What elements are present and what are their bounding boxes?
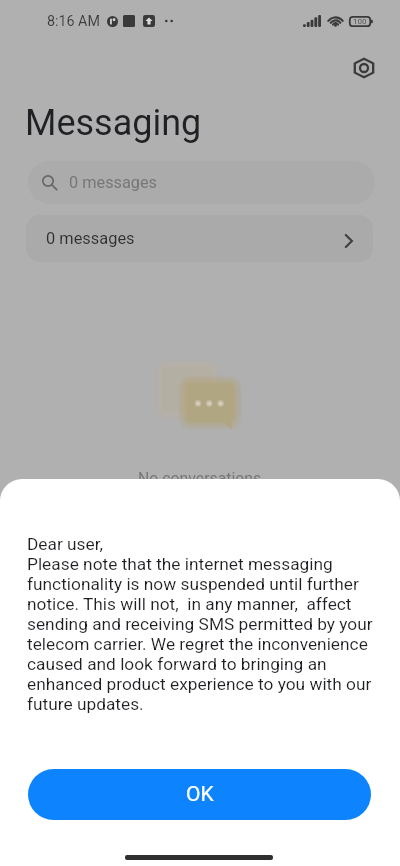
staticText: 100 xyxy=(353,17,367,26)
staticText: 0 messages xyxy=(46,229,135,248)
staticText: 0 messages xyxy=(69,173,158,192)
button[interactable]: Settings xyxy=(346,50,382,86)
button[interactable]: 0 messages xyxy=(26,215,373,262)
button[interactable]: OK xyxy=(28,769,371,820)
staticText: Messaging xyxy=(25,102,202,144)
staticText: No conversations xyxy=(138,469,262,488)
button[interactable]: 0 messages xyxy=(28,161,375,204)
staticText: 8:16 AM xyxy=(47,13,100,30)
staticText: OK xyxy=(186,782,214,807)
staticText: Dear user, Please note that the internet… xyxy=(27,534,386,714)
